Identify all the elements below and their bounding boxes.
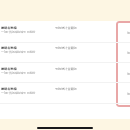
staticText: 号码统计金额明 — [55, 87, 77, 91]
staticText: 票据名称编 — [1, 87, 17, 91]
staticText: 号码统计金额明 — [55, 46, 77, 50]
staticText: 一/票 代码编码编号 日期时 — [1, 91, 36, 95]
button[interactable]: 票据名称编 — [0, 22, 130, 42]
staticText: 号码统计金额明 — [55, 67, 77, 71]
staticText: 票据名称编 — [1, 46, 17, 50]
staticText: 明细 — [127, 31, 130, 35]
staticText: 票据名称编 — [1, 26, 17, 30]
staticText: 明细 — [127, 92, 130, 96]
other: Detail panel — [116, 21, 130, 107]
button[interactable]: 票据名称编 — [0, 83, 130, 103]
staticText: 票据名称编 — [1, 67, 17, 71]
staticText: 一/票 代码编码编号 日期时 — [1, 50, 36, 54]
staticText: 明细 — [127, 51, 130, 55]
button[interactable]: 票据名称编 — [0, 63, 130, 83]
staticText: 一/票 代码编码编号 日期时 — [1, 30, 36, 34]
staticText: 明细 — [127, 72, 130, 76]
staticText: 号码统计金额明 — [55, 26, 77, 30]
button[interactable]: 票据名称编 — [0, 42, 130, 62]
staticText: 一/票 代码编码编号 日期时 — [1, 71, 36, 75]
